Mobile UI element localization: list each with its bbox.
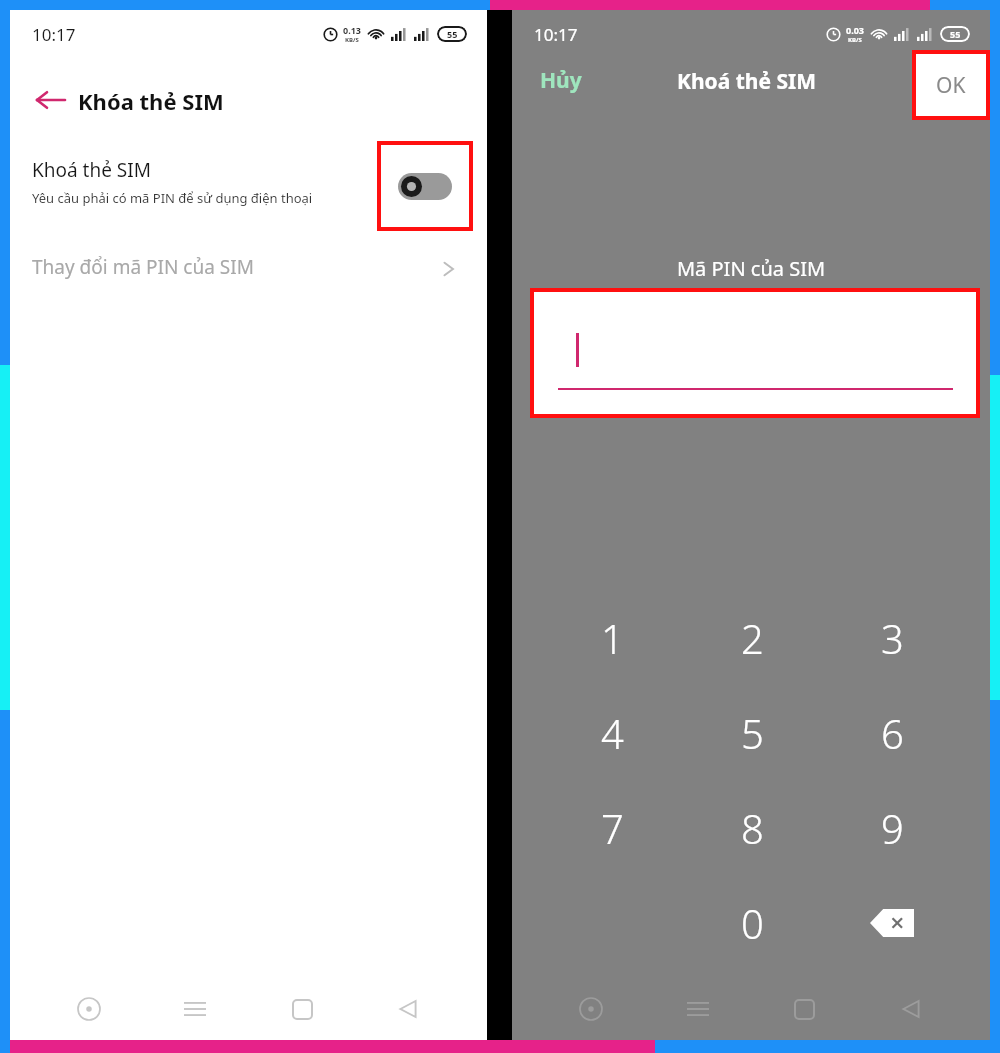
button[interactable]: 9 <box>822 780 962 875</box>
staticText: Khóa thẻ SIM <box>78 86 224 116</box>
staticText: 8 <box>741 801 764 855</box>
staticText: 0.03 <box>846 24 864 36</box>
button[interactable]: 4 <box>542 685 682 780</box>
staticText: 0 <box>741 896 764 950</box>
staticText: Thay đổi mã PIN của SIM <box>32 254 254 280</box>
staticText: 1 <box>601 611 624 665</box>
staticText: 4 <box>601 706 624 760</box>
staticText: KB/S <box>848 36 862 44</box>
button[interactable]: SIM lock switch <box>377 141 473 231</box>
staticText: 7 <box>601 801 624 855</box>
button[interactable]: Assistant <box>563 981 619 1037</box>
staticText: Khoá thẻ SIM <box>32 157 151 183</box>
staticText: 3 <box>881 611 904 665</box>
staticText: 9 <box>881 801 904 855</box>
button[interactable]: Home <box>776 981 832 1037</box>
button[interactable]: Hủy <box>540 66 582 95</box>
button[interactable] <box>530 288 980 418</box>
staticText: 0.13 <box>343 24 361 36</box>
staticText: KB/S <box>345 36 359 44</box>
button[interactable]: Thay đổi mã PIN của SIM <box>10 238 487 300</box>
button[interactable]: 8 <box>682 780 822 875</box>
button[interactable]: 3 <box>822 590 962 685</box>
staticText: OK <box>936 71 966 100</box>
staticText: 55 <box>950 28 961 40</box>
staticText: 5 <box>741 706 764 760</box>
button[interactable]: Recents <box>670 981 726 1037</box>
button[interactable]: Assistant <box>61 981 117 1037</box>
button[interactable]: 7 <box>542 780 682 875</box>
button[interactable]: 1 <box>542 590 682 685</box>
staticText: 10:17 <box>534 23 578 46</box>
staticText: 10:17 <box>32 23 76 46</box>
button[interactable]: 5 <box>682 685 822 780</box>
button[interactable]: Home <box>274 981 330 1037</box>
button[interactable]: Back <box>883 981 939 1037</box>
button[interactable]: Recents <box>167 981 223 1037</box>
staticText: 2 <box>741 611 764 665</box>
button[interactable]: Back <box>22 72 78 128</box>
staticText: Mã PIN của SIM <box>512 255 990 282</box>
staticText: 6 <box>881 706 904 760</box>
button[interactable]: 6 <box>822 685 962 780</box>
button[interactable]: 0 <box>682 875 822 970</box>
staticText: Khoá thẻ SIM <box>677 67 817 96</box>
button[interactable]: OK <box>912 50 990 120</box>
staticText: 55 <box>447 28 458 40</box>
button[interactable]: 2 <box>682 590 822 685</box>
button[interactable]: Back <box>380 981 436 1037</box>
button[interactable]: Khoá thẻ SIM <box>10 144 487 232</box>
staticText: Yêu cầu phải có mã PIN để sử dụng điện t… <box>32 189 313 207</box>
button[interactable]: Backspace <box>822 875 962 970</box>
